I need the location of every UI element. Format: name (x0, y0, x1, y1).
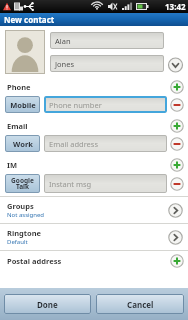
staticText: Email (7, 121, 170, 131)
staticText: Alan (55, 36, 71, 46)
button[interactable]: Remove Phone (170, 98, 184, 112)
button[interactable]: Remove Email (170, 137, 184, 151)
button[interactable]: Add IM (170, 158, 184, 172)
staticText: IM (7, 160, 170, 170)
button[interactable]: Phone number (44, 96, 167, 113)
staticText: Postal address (7, 256, 170, 266)
button[interactable]: Work (5, 135, 40, 152)
button[interactable]: Groups (0, 197, 188, 223)
button[interactable]: Done (4, 294, 91, 314)
button[interactable]: Google Talk (5, 174, 40, 193)
staticText: Not assigned (7, 211, 45, 219)
button[interactable]: Cancel (96, 294, 184, 314)
button[interactable]: Alan (50, 32, 164, 49)
staticText: New contact (4, 14, 55, 25)
staticText: Instant msg (49, 179, 92, 189)
button[interactable]: Expand name fields (167, 57, 184, 73)
button[interactable]: Jones (50, 55, 164, 72)
staticText: 13:42 (165, 1, 186, 12)
staticText: Cancel (127, 299, 154, 310)
button[interactable]: Add Postal address (170, 254, 184, 268)
button[interactable]: Ringtone (0, 224, 188, 250)
staticText: Work (13, 139, 33, 149)
staticText: Google Talk (11, 176, 34, 191)
button[interactable]: Email address (44, 135, 167, 152)
staticText: Phone (7, 82, 170, 92)
staticText: Email address (49, 139, 99, 149)
staticText: Default (7, 238, 28, 246)
staticText: Phone number (49, 100, 102, 110)
staticText: Mobile (10, 100, 36, 110)
staticText: Done (37, 299, 58, 310)
button[interactable]: Postal address (0, 251, 188, 271)
staticText: Jones (55, 59, 75, 69)
button[interactable]: Contact photo (5, 30, 45, 74)
button[interactable]: Add Phone (170, 80, 184, 94)
button[interactable]: Mobile (5, 96, 40, 113)
button[interactable]: Remove IM (170, 177, 184, 191)
button[interactable]: Add Email (170, 119, 184, 133)
button[interactable]: Instant msg (44, 174, 167, 193)
staticText: Groups (7, 201, 34, 211)
staticText: Ringtone (7, 228, 42, 238)
